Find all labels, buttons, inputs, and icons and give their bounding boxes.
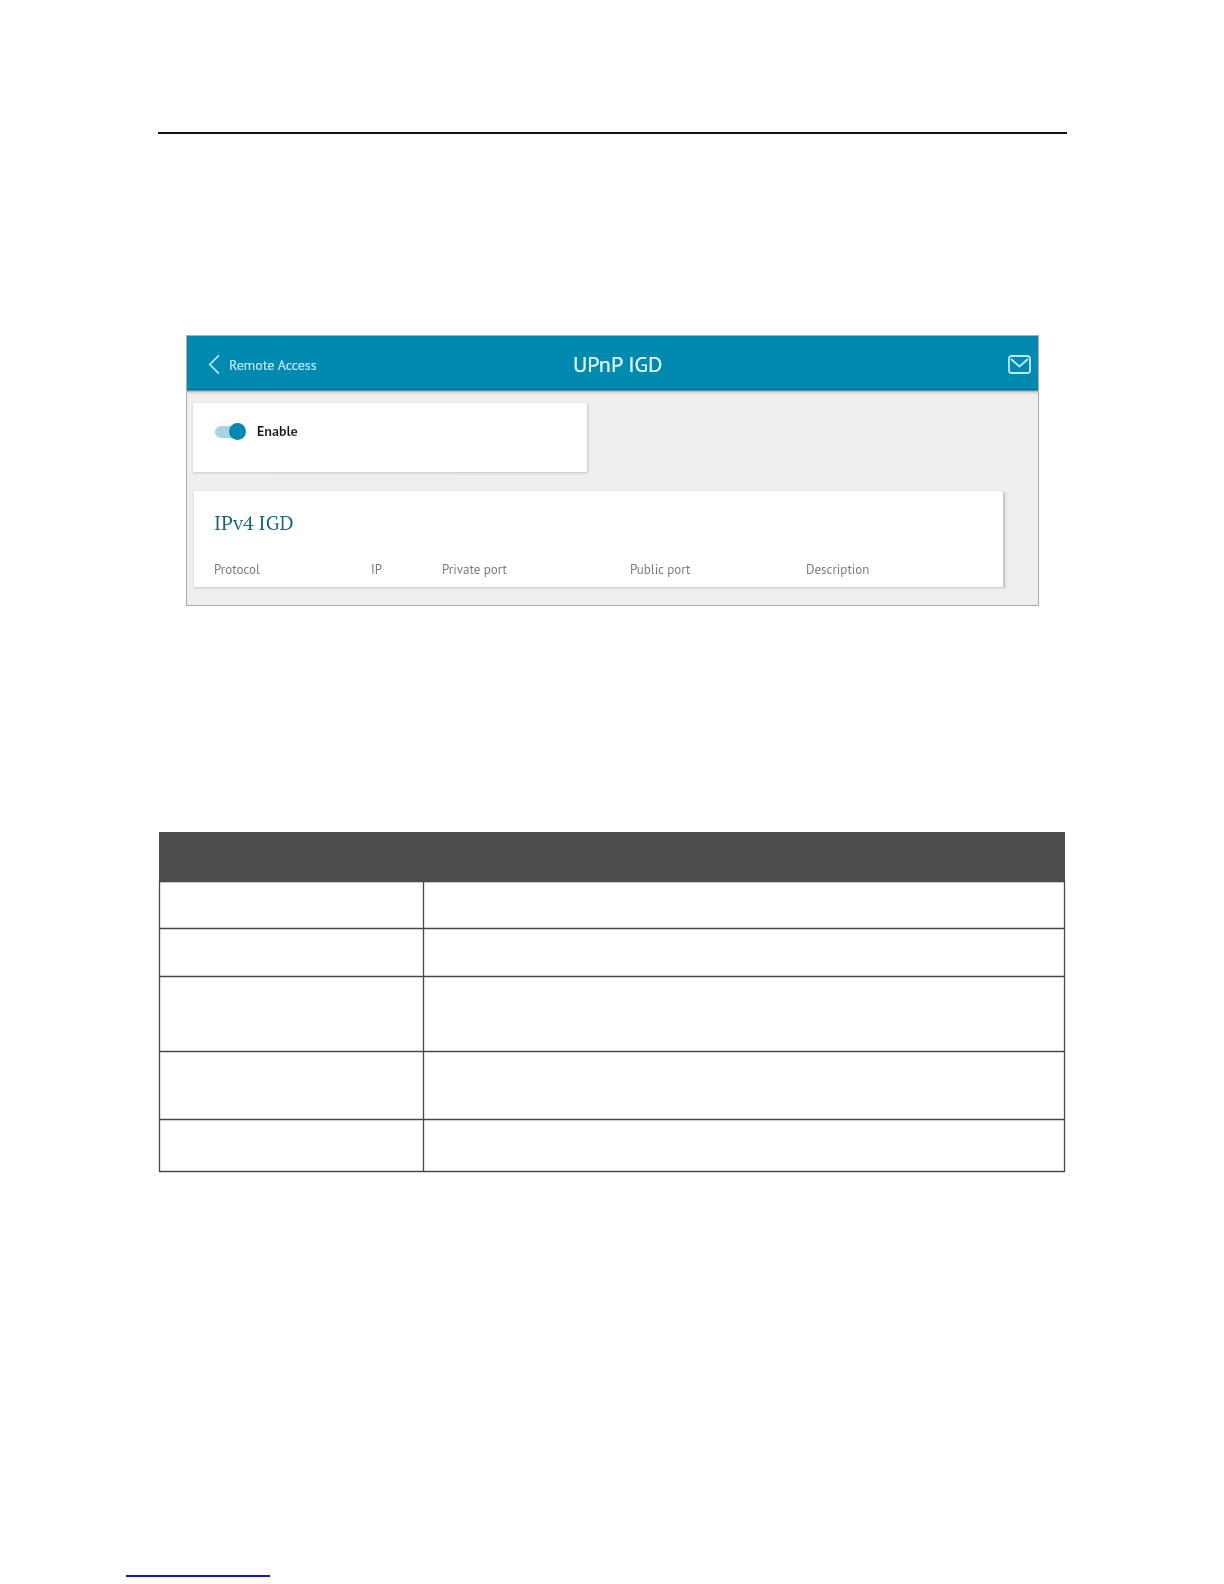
staticText: Remote Access (229, 356, 317, 374)
staticText: Description (806, 561, 870, 578)
staticText: Public port (630, 561, 691, 578)
button[interactable]: Messages (1002, 347, 1036, 381)
staticText: IP (371, 561, 383, 578)
button[interactable]: Remote Access (203, 349, 323, 380)
staticText: UPnP IGD (573, 350, 663, 378)
button[interactable]: Enable (193, 403, 587, 472)
staticText: Private port (442, 561, 507, 578)
staticText: Protocol (214, 561, 260, 578)
staticText: Enable (257, 422, 298, 440)
button[interactable]: IPv4 IGD (194, 491, 1003, 587)
staticText: IPv4 IGD (214, 509, 294, 536)
